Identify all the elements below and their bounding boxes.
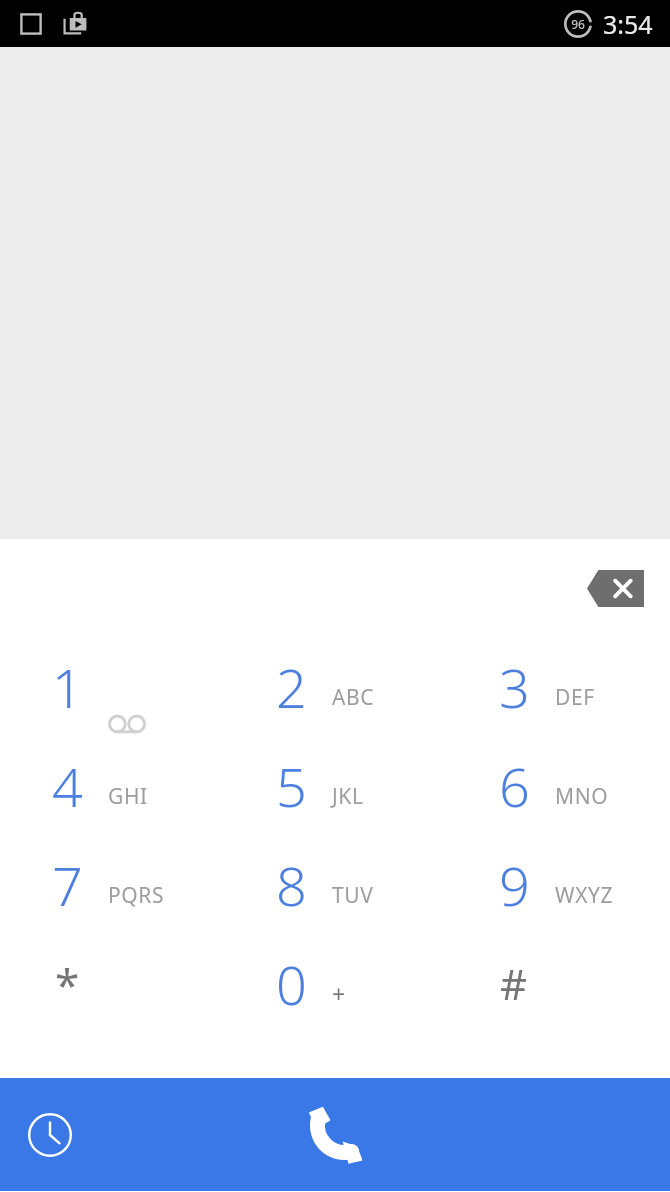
staticText: MNO [555,782,609,811]
staticText: 7 [52,848,83,922]
button[interactable]: Key 8 [224,835,447,934]
staticText: 8 [276,848,307,922]
button[interactable]: Backspace [582,566,648,610]
staticText: 1 [52,650,83,724]
button[interactable]: Key 6 [447,736,670,835]
staticText: 96 [571,16,585,32]
button[interactable]: Key * [0,934,224,1033]
staticText: 9 [499,848,530,922]
button[interactable]: Key 7 [0,835,224,934]
button[interactable]: Call [293,1093,377,1177]
staticText: + [332,978,346,1009]
button[interactable]: Key # [447,934,670,1033]
staticText: GHI [108,782,148,811]
button[interactable]: Key 9 [447,835,670,934]
staticText: * [55,954,80,1014]
staticText: 2 [276,650,307,724]
button[interactable]: Key 5 [224,736,447,835]
button[interactable]: Key 3 [447,637,670,736]
staticText: 4 [52,749,83,823]
staticText: PQRS [108,881,165,910]
button[interactable]: Key 0 [224,934,447,1033]
staticText: DEF [555,683,595,712]
staticText: JKL [332,782,364,811]
staticText: WXYZ [555,881,614,910]
button[interactable]: Key 1 [0,637,224,736]
staticText: TUV [332,881,374,910]
staticText: 6 [499,749,530,823]
button[interactable]: Key 4 [0,736,224,835]
button[interactable]: Call history [17,1102,83,1168]
button[interactable]: Key 2 [224,637,447,736]
staticText: 3:54 [603,7,653,41]
staticText: ABC [332,683,375,712]
staticText: 5 [276,749,307,823]
staticText: 0 [276,947,307,1021]
staticText: # [500,955,528,1012]
staticText: 3 [499,650,530,724]
